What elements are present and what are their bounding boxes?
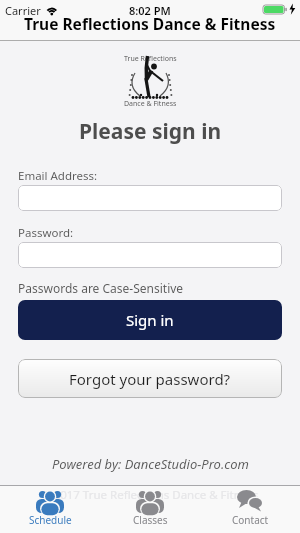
staticText: Forgot your password? (69, 369, 231, 389)
staticText: Carrier (5, 3, 41, 18)
button[interactable]: Powered by: DanceStudio-Pro.com (52, 455, 249, 473)
staticText: Please sign in (79, 117, 222, 146)
staticText: True Reflections Dance & Fitness (24, 13, 276, 34)
button[interactable]: Forgot your password? (18, 359, 282, 398)
staticText: Password: (18, 225, 74, 241)
staticText: True Reflections (124, 54, 177, 64)
staticText: 8:02 PM (129, 3, 171, 18)
staticText: © 2017 True Reflections Dance & Fitness (41, 487, 259, 503)
button[interactable]: Schedule (0, 487, 100, 533)
staticText: Classes (133, 513, 168, 527)
button[interactable] (18, 242, 282, 268)
staticText: Sign in (126, 310, 174, 330)
staticText: Email Address: (18, 168, 98, 184)
staticText: Passwords are Case-Sensitive (18, 280, 184, 296)
button[interactable]: Classes (100, 487, 200, 533)
staticText: Schedule (29, 513, 72, 527)
staticText: Contact (232, 513, 269, 527)
button[interactable]: Sign in (18, 300, 282, 340)
button[interactable] (18, 185, 282, 211)
staticText: Dance & Fitness (124, 99, 177, 109)
button[interactable]: Contact (200, 487, 300, 533)
